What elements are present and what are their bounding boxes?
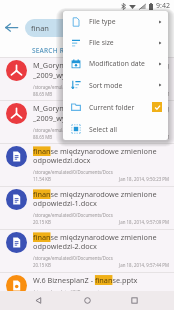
staticText: File size <box>89 38 114 47</box>
button[interactable]: M_Gorynia_Miedzynarodowe stosunki gospod… <box>0 101 174 143</box>
staticText: /storage/emulated/0/Downloads <box>33 84 101 90</box>
button[interactable]: Sort mode <box>63 74 168 96</box>
staticText: /storage/emulated/0/Documents/Docs <box>33 255 113 261</box>
staticText: 88.65 MB <box>33 134 53 140</box>
staticText: Select all <box>89 125 117 134</box>
staticText: Current folder <box>89 103 135 112</box>
staticText: 1.21 MB <box>33 296 50 302</box>
button[interactable]: finanse międzynarodowe zmienione odpowie… <box>0 144 174 186</box>
staticText: _2009_wyklad2.pdf <box>33 113 98 123</box>
staticText: W.6 BiznesplanZ - finanse.pptx <box>33 275 138 285</box>
staticText: 9:42 <box>156 1 170 11</box>
staticText: 88.65 MB <box>33 91 53 97</box>
staticText: File type <box>89 17 116 26</box>
button[interactable]: finanse międzynarodowe zmienione odpowie… <box>0 230 174 272</box>
staticText: Jan 18, 2014, 9:57:44 PM <box>51 262 169 268</box>
button[interactable]: Recent apps <box>124 291 144 310</box>
button[interactable]: Current folder <box>63 96 168 118</box>
staticText: finanse międzynarodowe zmienione odpowie… <box>33 189 169 208</box>
staticText: finanse międzynarodowe zmienione odpowie… <box>33 146 169 165</box>
button[interactable]: Home <box>77 291 97 310</box>
staticText: SEARCH RESULTS <box>32 46 88 55</box>
button[interactable]: Select all <box>63 118 168 140</box>
staticText: /storage/emulated/0/Documents <box>33 289 102 295</box>
staticText: Jan 18, 2014, 9:48:55 PM <box>53 134 169 140</box>
button[interactable]: Back <box>28 291 48 310</box>
staticText: Modification date <box>89 59 145 68</box>
button[interactable]: Modification date <box>63 53 168 74</box>
staticText: _2009_wyklad.pdf <box>33 70 94 80</box>
staticText: Jan 18, 2014, 9:50:23 PM <box>51 176 169 182</box>
staticText: Jan 18, 2014, 9:48:12 PM <box>53 91 169 97</box>
staticText: 20.15 KB <box>33 219 51 225</box>
staticText: /storage/emulated/0/Downloads <box>33 127 101 133</box>
staticText: finanse międzynarodowe zmienione odpowie… <box>33 232 169 251</box>
staticText: Jan 18, 2014, 9:57:09 PM <box>51 219 169 225</box>
staticText: 20.15 KB <box>33 262 51 268</box>
button[interactable]: finanse międzynarodowe zmienione odpowie… <box>0 187 174 229</box>
button[interactable]: W.6 BiznesplanZ - finanse.pptx <box>0 273 174 310</box>
staticText: M_Gorynia_Miedzynarodowe stosunki gospod… <box>33 60 169 70</box>
staticText: /storage/emulated/0/Documents/Docs <box>33 169 113 175</box>
staticText: M_Gorynia_Miedzynarodowe stosunki gospod… <box>33 103 169 113</box>
staticText: 11.54 KB <box>33 176 51 182</box>
button[interactable]: File size <box>63 32 168 53</box>
button[interactable]: M_Gorynia_Miedzynarodowe stosunki gospod… <box>0 58 174 100</box>
staticText: finan <box>31 23 49 33</box>
button[interactable]: File type <box>63 11 168 32</box>
button[interactable]: finan <box>25 19 145 37</box>
staticText: /storage/emulated/0/Documents/Docs <box>33 212 113 218</box>
button[interactable]: Back <box>0 16 23 39</box>
staticText: Jan 18, 2014, 9:58:30 PM <box>50 296 169 302</box>
staticText: Sort mode <box>89 81 123 90</box>
